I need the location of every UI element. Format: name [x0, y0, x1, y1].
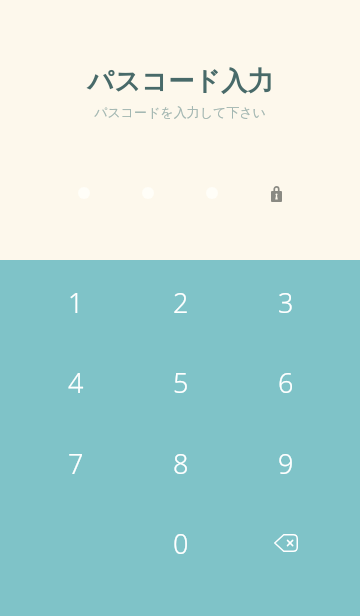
staticText: 4: [68, 364, 84, 401]
staticText: 0: [173, 525, 189, 562]
button[interactable]: 5: [131, 343, 231, 421]
staticText: パスコード入力: [87, 65, 274, 98]
button[interactable]: 1: [26, 263, 126, 341]
staticText: パスコードを入力して下さい: [94, 104, 266, 120]
staticText: 2: [173, 284, 189, 321]
button[interactable]: Backspace: [236, 504, 336, 582]
staticText: 8: [173, 445, 189, 482]
button[interactable]: 0: [131, 504, 231, 582]
other: Locked: [271, 186, 282, 202]
staticText: 1: [68, 284, 84, 321]
button[interactable]: 2: [131, 263, 231, 341]
button[interactable]: 7: [26, 424, 126, 502]
staticText: 9: [278, 445, 294, 482]
button[interactable]: 4: [26, 343, 126, 421]
button[interactable]: 8: [131, 424, 231, 502]
other: Backspace: [274, 534, 298, 552]
staticText: 3: [278, 284, 294, 321]
staticText: 6: [278, 364, 294, 401]
button[interactable]: 6: [236, 343, 336, 421]
staticText: 7: [68, 445, 84, 482]
button[interactable]: 9: [236, 424, 336, 502]
button[interactable]: 3: [236, 263, 336, 341]
staticText: 5: [173, 364, 189, 401]
